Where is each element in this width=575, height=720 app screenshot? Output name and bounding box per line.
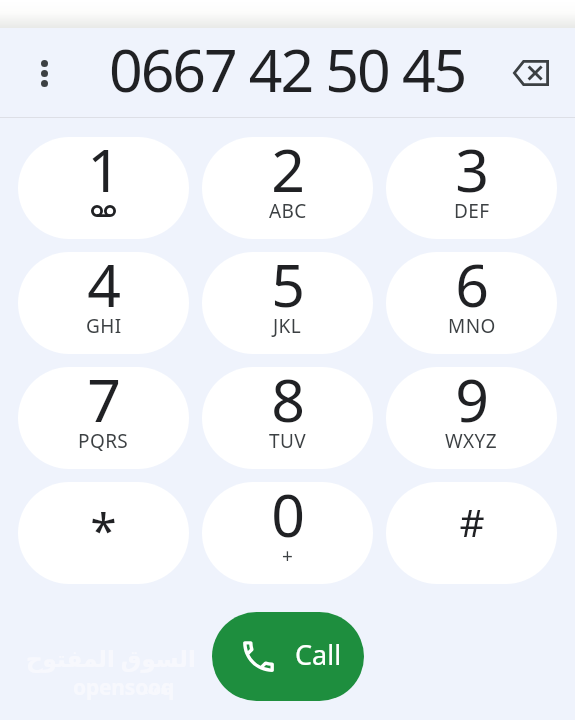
- button[interactable]: 9: [386, 367, 557, 469]
- button[interactable]: #: [386, 482, 557, 584]
- button[interactable]: 3: [386, 137, 557, 239]
- staticText: 6: [455, 252, 489, 324]
- button[interactable]: Backspace: [507, 49, 555, 97]
- staticText: *: [90, 497, 117, 562]
- button[interactable]: 8: [202, 367, 373, 469]
- button[interactable]: *: [18, 482, 189, 584]
- staticText: السوق المفتوح: [26, 642, 256, 673]
- staticText: DEF: [454, 198, 490, 224]
- staticText: 2: [271, 137, 305, 209]
- staticText: +: [282, 543, 294, 569]
- staticText: GHI: [86, 313, 122, 339]
- staticText: ABC: [269, 198, 307, 224]
- staticText: 3: [455, 137, 489, 209]
- button[interactable]: 0: [202, 482, 373, 584]
- button[interactable]: 7: [18, 367, 189, 469]
- staticText: WXYZ: [445, 428, 498, 454]
- staticText: 5: [271, 252, 305, 324]
- staticText: Call: [295, 636, 342, 673]
- staticText: 1: [87, 137, 121, 209]
- button[interactable]: Call: [212, 612, 364, 701]
- staticText: 8: [271, 367, 305, 439]
- staticText: PQRS: [78, 428, 129, 454]
- button[interactable]: 4: [18, 252, 189, 354]
- staticText: MNO: [448, 313, 496, 339]
- button[interactable]: More options: [26, 55, 62, 91]
- staticText: TUV: [269, 428, 307, 454]
- staticText: #: [459, 495, 485, 548]
- button[interactable]: 1: [18, 137, 189, 239]
- staticText: 4: [87, 252, 121, 324]
- button[interactable]: 5: [202, 252, 373, 354]
- button[interactable]: 6: [386, 252, 557, 354]
- staticText: 9: [455, 367, 489, 439]
- staticText: .com: [145, 682, 205, 697]
- staticText: opensooq: [73, 673, 203, 702]
- staticText: JKL: [273, 313, 302, 339]
- staticText: 0: [271, 482, 305, 554]
- staticText: 7: [87, 367, 121, 439]
- button[interactable]: 2: [202, 137, 373, 239]
- staticText: 0667 42 50 45: [109, 29, 466, 109]
